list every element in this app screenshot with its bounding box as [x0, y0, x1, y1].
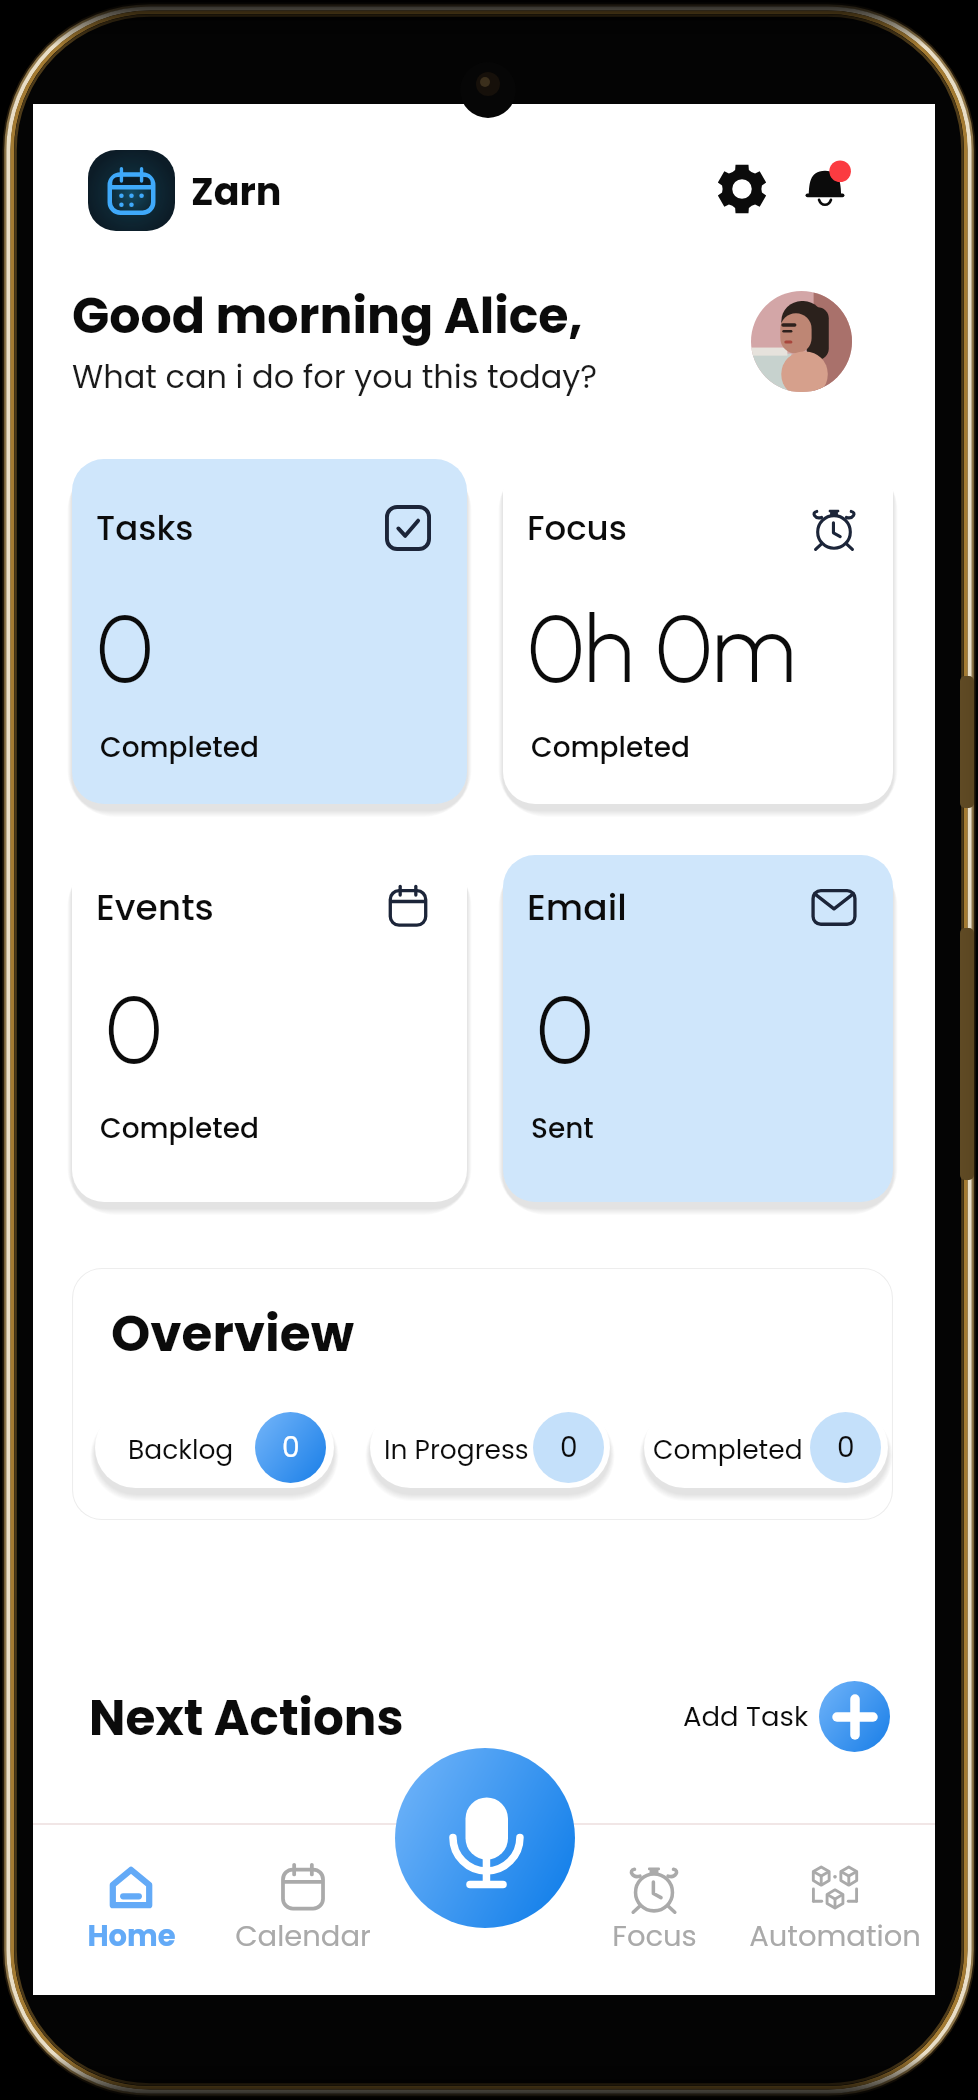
staticText: 0h 0m	[528, 593, 796, 706]
staticText: Completed	[531, 728, 690, 767]
staticText: Automation	[749, 1916, 921, 1957]
button[interactable]: Events	[72, 855, 467, 1202]
staticText: Completed	[100, 1109, 259, 1148]
staticText: Zarn	[191, 165, 282, 218]
staticText: Sent	[531, 1109, 594, 1148]
staticText: Focus	[527, 504, 627, 552]
staticText: In Progress	[384, 1431, 529, 1468]
button[interactable]: Focus	[564, 1854, 744, 1979]
staticText: 0	[560, 1428, 578, 1467]
button[interactable]: Email	[503, 855, 893, 1202]
staticText: Completed	[100, 728, 259, 767]
staticText: Overview	[111, 1299, 354, 1369]
button[interactable]: Backlog	[95, 1407, 334, 1488]
staticText: Next Actions	[89, 1684, 404, 1752]
staticText: 0	[97, 593, 153, 706]
staticText: Home	[87, 1916, 176, 1957]
button[interactable]: Overview	[72, 1268, 893, 1520]
button[interactable]: Automation	[745, 1854, 925, 1979]
staticText: Good morning Alice,	[72, 282, 583, 351]
staticText: Calendar	[235, 1916, 371, 1957]
staticText: Focus	[612, 1916, 697, 1957]
staticText: 0	[837, 1428, 855, 1467]
button[interactable]: Tasks	[72, 459, 467, 804]
staticText: Completed	[653, 1431, 803, 1468]
button[interactable]: Focus	[503, 459, 893, 804]
staticText: 0	[282, 1428, 300, 1467]
button[interactable]: Profile	[751, 291, 852, 392]
staticText: 0	[537, 974, 593, 1087]
staticText: Backlog	[128, 1431, 234, 1468]
button[interactable]: Add Task	[683, 1680, 890, 1752]
button[interactable]: In Progress	[370, 1407, 610, 1488]
button[interactable]: Voice assistant	[395, 1748, 575, 1928]
staticText: Tasks	[96, 504, 194, 552]
button[interactable]: Notifications	[791, 154, 859, 222]
button[interactable]: Home	[41, 1854, 221, 1979]
button[interactable]: Settings	[710, 157, 774, 221]
staticText: Events	[96, 882, 214, 932]
staticText: Email	[527, 882, 627, 932]
button[interactable]: Completed	[644, 1407, 888, 1488]
button[interactable]: Zarn	[88, 150, 282, 231]
staticText: 0	[106, 974, 162, 1087]
staticText: Add Task	[683, 1697, 809, 1735]
staticText: What can i do for you this today?	[72, 354, 598, 399]
button[interactable]: Calendar	[213, 1854, 393, 1979]
